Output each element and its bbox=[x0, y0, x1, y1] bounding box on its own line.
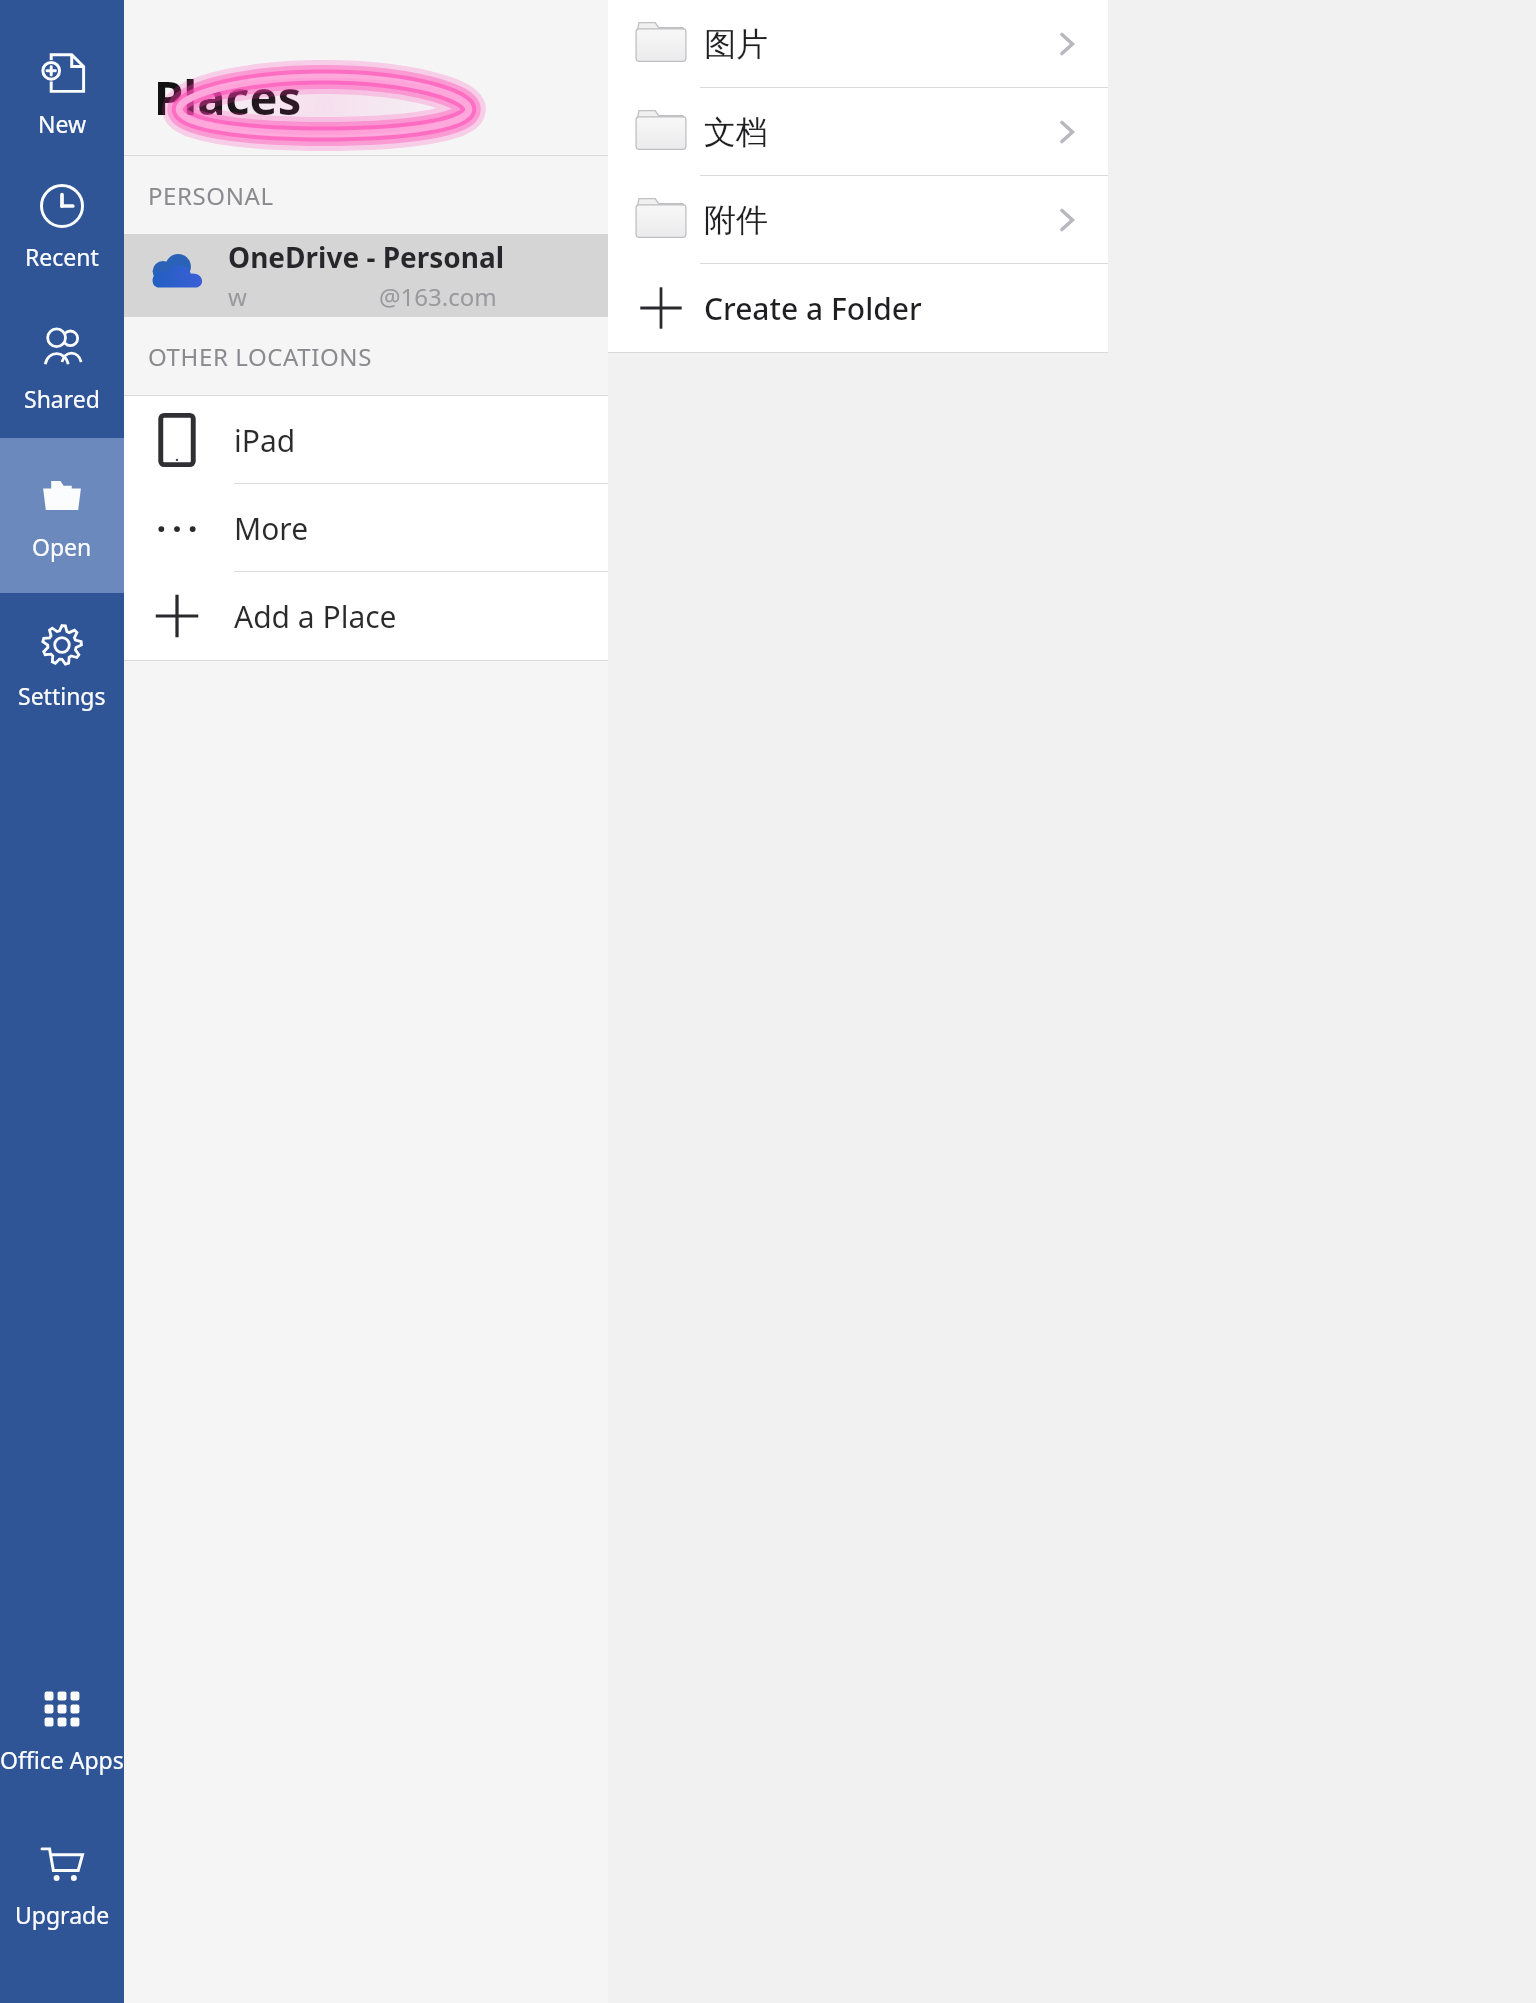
staticText: iPad bbox=[234, 420, 296, 461]
button[interactable]: OneDrive - Personal bbox=[124, 234, 608, 317]
staticText: Settings bbox=[18, 680, 106, 711]
button[interactable]: Upgrade bbox=[0, 1803, 124, 1963]
button[interactable]: Add a Place bbox=[124, 572, 608, 660]
button[interactable]: Shared bbox=[0, 296, 124, 438]
button[interactable]: More bbox=[124, 484, 608, 572]
staticText: More bbox=[234, 508, 309, 549]
button[interactable]: Create a Folder bbox=[608, 264, 1108, 352]
staticText: Places bbox=[154, 65, 302, 129]
button[interactable]: 图片 bbox=[608, 0, 1108, 88]
staticText: PERSONAL bbox=[148, 179, 274, 212]
staticText: 附件 bbox=[704, 200, 768, 240]
button[interactable]: New bbox=[0, 30, 124, 154]
staticText: 图片 bbox=[704, 24, 768, 64]
staticText: w bbox=[228, 280, 247, 313]
staticText: Upgrade bbox=[15, 1899, 110, 1930]
button[interactable]: 文档 bbox=[608, 88, 1108, 176]
button[interactable]: 附件 bbox=[608, 176, 1108, 264]
staticText: Shared bbox=[24, 383, 100, 414]
staticText: Create a Folder bbox=[704, 288, 922, 329]
staticText: @163.com bbox=[379, 280, 497, 313]
staticText: OneDrive - Personal bbox=[228, 238, 505, 276]
staticText: New bbox=[38, 108, 87, 139]
button[interactable]: Settings bbox=[0, 593, 124, 735]
button[interactable]: Open bbox=[0, 438, 124, 593]
button[interactable]: Office Apps bbox=[0, 1653, 124, 1803]
staticText: 文档 bbox=[704, 112, 768, 152]
staticText: Office Apps bbox=[0, 1744, 124, 1775]
staticText: Open bbox=[32, 531, 92, 562]
staticText: OTHER LOCATIONS bbox=[148, 340, 372, 373]
staticText: Add a Place bbox=[234, 596, 397, 637]
button[interactable]: Recent bbox=[0, 154, 124, 296]
button[interactable]: iPad bbox=[124, 396, 608, 484]
staticText: Recent bbox=[25, 241, 99, 272]
